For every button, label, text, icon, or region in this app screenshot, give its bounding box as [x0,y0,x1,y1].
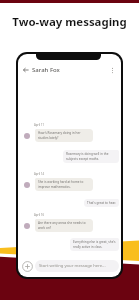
staticText: April 16 [34,213,45,217]
button[interactable]: Back [21,65,31,75]
staticText: Rosemary is doing well in the subjects e… [66,152,116,161]
button[interactable]: Sarah Fox avatar [24,133,30,139]
staticText: Start writing your message here... [39,263,106,269]
button[interactable]: She is working hard at home to improve m… [35,178,93,191]
button[interactable]: Sarah Fox avatar [24,182,30,188]
button[interactable]: Sarah Fox avatar [24,223,30,229]
button[interactable]: Start writing your message here... [35,260,119,272]
staticText: April 14 [34,172,45,176]
button[interactable]: That's great to hear. [84,199,119,207]
button[interactable]: Are there any areas she needs to work on… [35,219,93,232]
staticText: Everything else is great, she's really a… [73,240,116,249]
button[interactable]: More options [107,65,117,75]
staticText: That's great to hear. [87,201,116,205]
staticText: Are there any areas she needs to work on… [38,221,90,230]
button[interactable]: Everything else is great, she's really a… [70,238,119,251]
staticText: She is working hard at home to improve m… [38,180,90,189]
button[interactable]: Rosemary is doing well in the subjects e… [63,150,119,163]
staticText: April 11 [34,123,45,127]
staticText: Sarah Fox [32,66,60,74]
staticText: How's Rosemary doing in her studies late… [38,131,90,140]
button[interactable]: Add attachment [21,260,33,272]
staticText: Two-way messaging [0,14,139,30]
button[interactable]: How's Rosemary doing in her studies late… [35,129,93,142]
